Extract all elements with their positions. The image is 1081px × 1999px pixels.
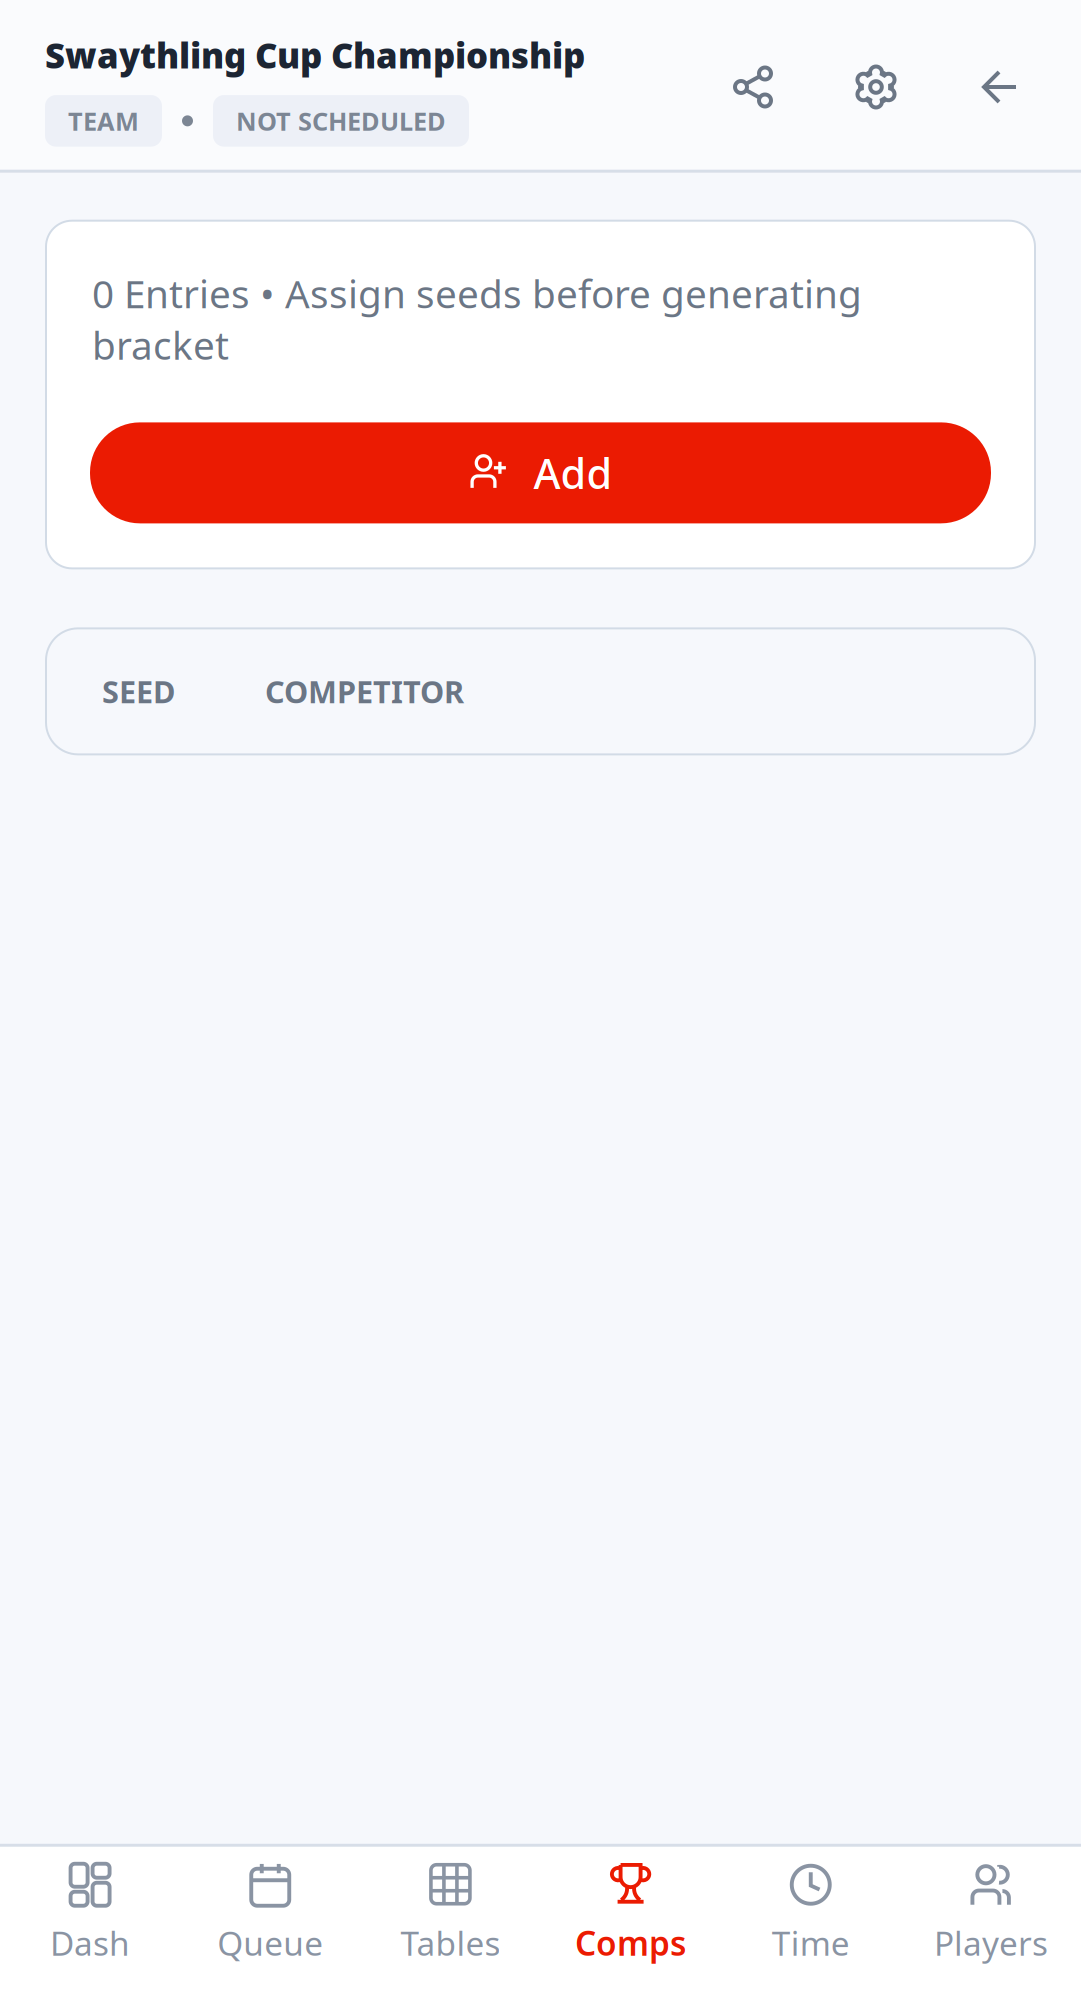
- staticText: Dash: [50, 1921, 130, 1965]
- staticText: Comps: [575, 1921, 686, 1965]
- button[interactable]: Comps: [540, 1848, 721, 1979]
- staticText: NOT SCHEDULED: [236, 104, 446, 138]
- staticText: SEED: [102, 671, 175, 712]
- button[interactable]: Tables: [360, 1848, 540, 1979]
- staticText: Add: [533, 445, 612, 500]
- staticText: TEAM: [68, 104, 139, 138]
- staticText: Time: [772, 1921, 850, 1965]
- button[interactable]: Time: [721, 1848, 901, 1979]
- staticText: 0 Entries • Assign seeds before generati…: [92, 268, 862, 370]
- button[interactable]: Settings: [852, 63, 900, 111]
- button[interactable]: Add: [90, 422, 991, 523]
- staticText: Players: [934, 1921, 1048, 1965]
- button[interactable]: Queue: [180, 1848, 360, 1979]
- staticText: Tables: [400, 1921, 500, 1965]
- button[interactable]: Share: [729, 63, 777, 111]
- staticText: Queue: [217, 1921, 323, 1965]
- button[interactable]: Back: [975, 63, 1023, 111]
- staticText: COMPETITOR: [265, 671, 464, 712]
- staticText: Swaythling Cup Championship: [45, 32, 585, 78]
- button[interactable]: Players: [901, 1848, 1081, 1979]
- button[interactable]: Dash: [0, 1848, 180, 1979]
